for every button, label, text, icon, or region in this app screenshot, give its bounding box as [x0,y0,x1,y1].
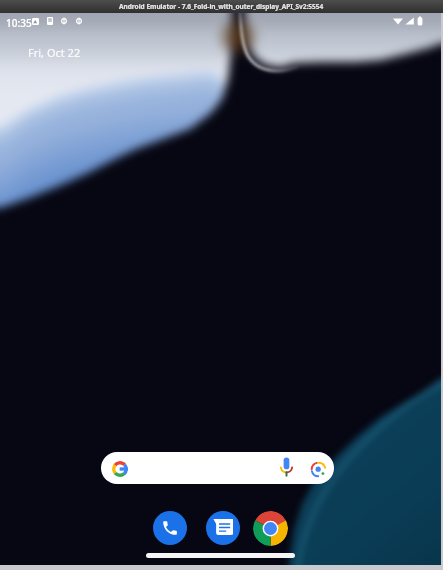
button[interactable]: Messages [206,511,240,545]
button[interactable]: Google Lens [307,458,329,480]
staticText: Android Emulator - 7.6_Fold-in_with_oute… [119,2,324,11]
button[interactable]: Phone [153,511,187,545]
button[interactable]: Voice search [275,455,297,477]
staticText: Fri, Oct 22 [28,45,81,60]
button[interactable] [101,452,334,484]
staticText: 10:35 [6,16,32,30]
button[interactable]: Chrome [253,511,288,546]
